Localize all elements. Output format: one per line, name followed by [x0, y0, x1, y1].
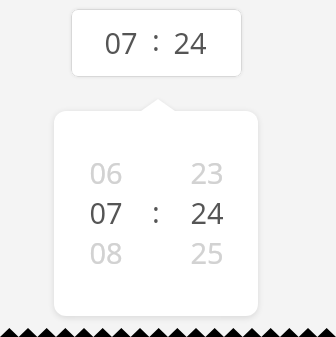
staticText: 24	[160, 23, 220, 62]
button[interactable]	[54, 224, 258, 264]
button[interactable]	[54, 144, 258, 184]
staticText: 23	[177, 153, 237, 192]
staticText: :	[126, 192, 186, 231]
staticText: 25	[177, 233, 237, 272]
staticText: 08	[76, 233, 136, 272]
staticText: 24	[177, 193, 237, 232]
button[interactable]: Selected time 07:24	[71, 9, 242, 77]
staticText: 07	[91, 23, 151, 62]
staticText: :	[126, 20, 186, 59]
staticText: 06	[76, 153, 136, 192]
button[interactable]	[54, 184, 258, 224]
staticText: 07	[76, 193, 136, 232]
